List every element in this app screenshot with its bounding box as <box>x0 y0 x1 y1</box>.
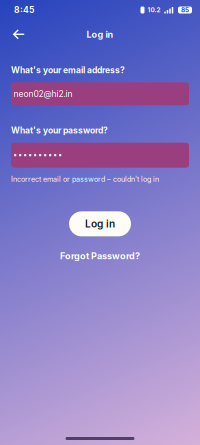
staticText: Forgot Password? <box>60 250 140 261</box>
button[interactable] <box>11 143 189 168</box>
button[interactable]: Back <box>6 21 32 47</box>
staticText: 85 <box>181 6 189 14</box>
button[interactable]: Forgot Password? <box>60 250 140 261</box>
staticText: neon02@hi2.in <box>13 89 72 99</box>
staticText: Log in <box>86 29 113 40</box>
staticText: What's your password? <box>11 125 108 136</box>
staticText: Incorrect email or password – couldn't l… <box>11 175 159 183</box>
staticText: 10.2 <box>147 6 160 14</box>
staticText: Log in <box>85 218 115 230</box>
button[interactable]: Log in <box>69 211 131 236</box>
staticText: What's your email address? <box>11 65 125 75</box>
button[interactable]: neon02@hi2.in <box>11 82 189 105</box>
staticText: 8:45 <box>14 5 34 15</box>
